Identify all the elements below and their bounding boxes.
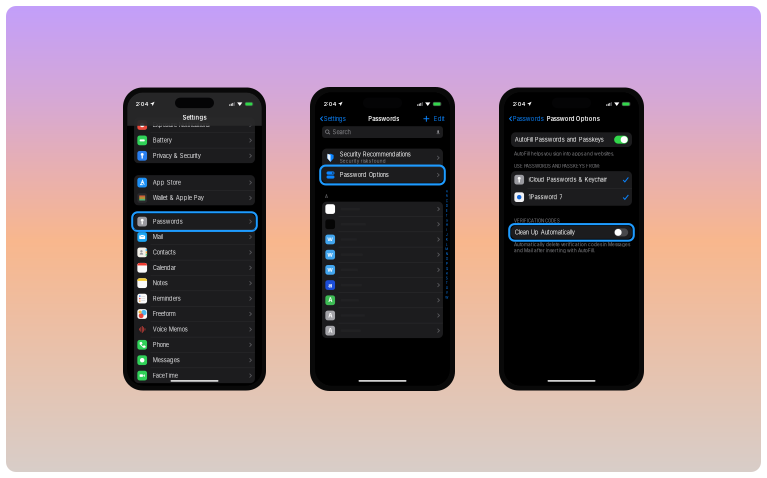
staticText: Passwords [153,218,183,225]
button[interactable]: Search [322,126,443,138]
staticText: USE PASSWORDS AND PASSKEYS FROM: [514,164,600,169]
staticText: P [446,262,448,266]
staticText: T [446,281,448,285]
staticText: Voice Memos [153,326,188,333]
button[interactable]: Mail [134,229,255,244]
staticText: E [446,209,448,213]
staticText: W [327,267,333,273]
button[interactable] [322,202,443,216]
staticText: H [446,223,448,227]
button[interactable]: A [322,308,443,323]
button[interactable]: Clean Up Automatically [614,228,628,236]
staticText: Phone [153,341,169,348]
staticText: Automatically delete verification codes … [514,242,630,247]
staticText: Edit [434,115,445,122]
button[interactable]: Passwords [509,115,544,122]
button[interactable]: Phone [134,337,255,352]
staticText: Passwords [368,115,399,122]
button[interactable]: Wallet & Apple Pay [134,190,255,205]
staticText: 1Password 7 [528,194,562,201]
button[interactable]: W [322,247,443,262]
button[interactable]: Settings [320,115,346,122]
button[interactable]: Add Password [422,116,431,122]
staticText: Clean Up Automatically [515,229,575,236]
staticText: A [328,327,332,334]
button[interactable]: A [322,323,443,338]
staticText: Passwords [513,115,544,122]
button[interactable]: Edit [431,115,445,122]
button[interactable]: W [322,262,443,277]
button[interactable]: A [322,293,443,308]
button[interactable]: Contacts [134,245,255,260]
staticText: Security risks found [340,158,386,164]
staticText: Mail [153,233,163,240]
staticText: Reminders [153,295,181,302]
staticText: a [328,281,332,289]
button[interactable]: AutoFill Passwords and Passkeys [614,136,628,144]
staticText: R [446,271,448,275]
staticText: Security Recommendations [340,151,411,158]
staticText: M [445,247,448,251]
staticText: K [446,238,448,242]
staticText: FaceTime [153,372,178,379]
staticText: Freeform [153,310,176,317]
button[interactable]: W [322,232,443,247]
button[interactable]: Battery [134,133,255,148]
staticText: Q [446,267,448,271]
staticText: and Mail after inserting with AutoFill. [514,248,595,253]
staticText: A [325,194,328,199]
button[interactable]: Passwords [134,214,255,229]
staticText: Password Options [340,171,389,178]
staticText: W [445,296,448,299]
button[interactable]: App Store [134,175,255,190]
staticText: App Store [153,179,181,186]
staticText: L [446,242,448,246]
staticText: AutoFill Passwords and Passkeys [515,136,604,143]
staticText: W [327,236,333,243]
staticText: S [446,276,448,280]
staticText: Settings [182,114,206,121]
staticText: G [446,218,448,222]
button[interactable]: Security Recommendations [322,149,443,167]
button[interactable]: Voice Memos [134,322,255,337]
staticText: Calendar [153,264,176,271]
staticText: Search [333,129,351,135]
staticText: A [328,312,332,319]
staticText: B [446,194,448,198]
staticText: Contacts [153,249,176,256]
button[interactable] [322,217,443,232]
button[interactable]: FaceTime [134,368,255,383]
button[interactable]: iCloud Passwords & Keychain [511,171,632,188]
button[interactable]: 1Password 7 [511,189,632,206]
staticText: A [446,189,448,193]
staticText: N [446,252,448,256]
staticText: O [446,257,448,261]
staticText: V [446,291,448,295]
staticText: 2:04 [324,101,337,107]
staticText: C [446,199,448,203]
staticText: Exposure Notifications [153,121,210,128]
staticText: Notes [153,280,168,287]
button[interactable]: a [322,278,443,292]
button[interactable]: Exposure Notifications [134,117,255,132]
staticText: I [446,228,447,232]
staticText: U [446,286,448,290]
staticText: iCloud Passwords & Keychain [528,176,607,183]
button[interactable]: Calendar [134,260,255,275]
button[interactable]: Privacy & Security [134,148,255,163]
staticText: Settings [324,115,346,122]
button[interactable]: Reminders [134,291,255,306]
staticText: Password Options [547,115,600,122]
button[interactable]: Freeform [134,306,255,321]
staticText: J [446,233,448,237]
staticText: AutoFill helps you sign into apps and we… [514,151,614,157]
staticText: Wallet & Apple Pay [153,194,204,201]
button[interactable]: Messages [134,353,255,368]
staticText: Privacy & Security [153,152,201,159]
button[interactable]: Notes [134,276,255,291]
staticText: VERIFICATION CODES [514,218,560,223]
staticText: A [328,297,332,304]
staticText: 2:04 [513,101,526,107]
staticText: F [446,214,448,217]
button[interactable]: Password Options [322,167,443,183]
